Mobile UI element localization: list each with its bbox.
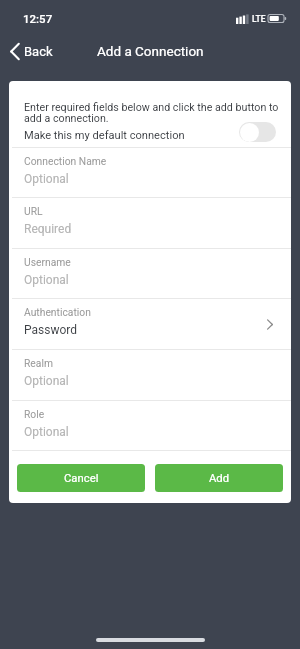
button[interactable]: Realm: [9, 350, 291, 400]
staticText: Connection Name: [24, 155, 107, 167]
other: Back: [10, 43, 20, 60]
staticText: Add a Connection: [97, 43, 204, 59]
staticText: Optional: [24, 374, 69, 388]
button[interactable]: Username: [9, 249, 291, 298]
button[interactable]: Role: [9, 401, 291, 450]
button[interactable]: Cancel: [17, 464, 145, 492]
staticText: Optional: [24, 172, 69, 186]
button[interactable]: Make this my default connection: [239, 122, 276, 142]
other: Choose authentication: [267, 319, 273, 330]
staticText: Required: [24, 222, 72, 236]
staticText: Role: [24, 408, 45, 420]
staticText: Enter required fields below and click th…: [24, 101, 285, 125]
button[interactable]: Connection Name: [9, 148, 291, 197]
staticText: Make this my default connection: [24, 129, 185, 142]
staticText: Username: [24, 256, 71, 268]
staticText: Realm: [24, 357, 53, 369]
staticText: URL: [24, 205, 43, 217]
staticText: Authentication: [24, 306, 91, 318]
button[interactable]: Back: [10, 36, 53, 66]
button[interactable]: Add: [155, 464, 283, 492]
button[interactable]: URL: [9, 198, 291, 248]
staticText: LTE: [252, 14, 266, 24]
staticText: Cancel: [64, 472, 99, 485]
staticText: Add: [209, 472, 230, 485]
staticText: 12:57: [23, 12, 53, 25]
button[interactable]: Authentication: [9, 299, 291, 349]
staticText: Optional: [24, 425, 69, 439]
staticText: Back: [24, 44, 53, 59]
staticText: Optional: [24, 273, 69, 287]
staticText: Password: [24, 323, 78, 337]
button[interactable]: Make this my default connection: [9, 125, 291, 147]
